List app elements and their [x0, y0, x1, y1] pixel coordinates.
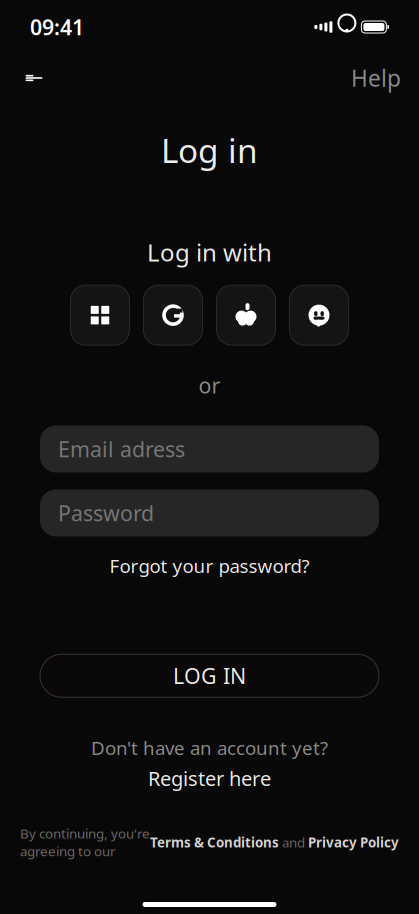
staticText: or [198, 371, 220, 399]
staticText: Register here [148, 765, 271, 792]
button[interactable]: Sign in with GitHub [289, 285, 348, 345]
staticText: Email adress [58, 435, 185, 463]
staticText: LOG IN [173, 662, 246, 690]
button[interactable]: Terms & Conditions [150, 833, 279, 851]
staticText: Log in [161, 128, 258, 172]
staticText: By continuing, you're agreeing to our [20, 825, 150, 860]
button[interactable]: Sign in with Microsoft [70, 285, 129, 345]
staticText: Privacy Policy [308, 833, 399, 851]
staticText: Don't have an account yet? [91, 735, 328, 760]
button[interactable]: Help [345, 56, 407, 100]
staticText: Forgot your password? [109, 553, 309, 578]
staticText: Log in with [147, 236, 272, 268]
button[interactable]: Back [12, 56, 56, 100]
button[interactable]: Privacy Policy [308, 833, 399, 851]
button[interactable]: LOG IN [40, 654, 379, 697]
button[interactable]: Password [40, 489, 379, 536]
button[interactable]: Register here [140, 763, 279, 794]
button[interactable]: Sign in with Apple [216, 285, 275, 345]
staticText: 09:41 [30, 13, 84, 41]
button[interactable]: Forgot your password? [101, 549, 317, 582]
button[interactable]: Sign in with Google [143, 285, 202, 345]
staticText: and [279, 833, 308, 851]
staticText: Help [351, 63, 401, 93]
staticText: Password [58, 499, 154, 527]
staticText: Terms & Conditions [150, 833, 279, 851]
button[interactable]: Email adress [40, 425, 379, 472]
